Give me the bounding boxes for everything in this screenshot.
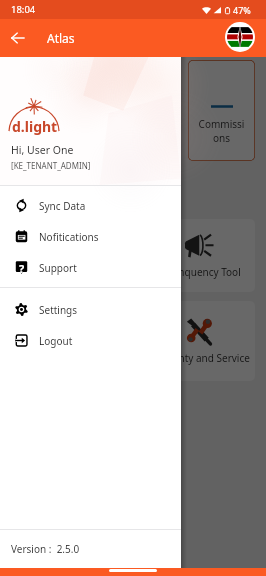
staticText: d.light — [12, 117, 58, 136]
button[interactable]: Settings — [0, 294, 181, 325]
button[interactable]: Delinquency Tool — [11, 219, 121, 292]
staticText: Settings — [39, 303, 78, 317]
staticText: Delinquency Tool — [26, 265, 107, 279]
staticText: Logout — [39, 334, 73, 348]
button[interactable]: ? — [0, 252, 181, 283]
button[interactable]: Sync Data — [0, 190, 181, 221]
staticText: Hi, User One — [11, 143, 74, 157]
staticText: [KE_TENANT_ADMIN] — [11, 160, 91, 171]
staticText: Support — [39, 261, 77, 275]
button[interactable]: Commissions — [114, 60, 181, 161]
button[interactable]: Warranty and Service — [11, 301, 121, 381]
staticText: Nofitications — [39, 230, 99, 244]
button[interactable]: Delinquency Tool — [145, 219, 255, 292]
staticText: Delinquency Tool — [160, 265, 241, 279]
staticText: 18:04 — [11, 3, 36, 16]
button[interactable]: Warranty and Service — [145, 301, 255, 381]
staticText: Version : 2.5.0 — [11, 542, 80, 556]
staticText: Atlas — [47, 30, 75, 46]
staticText: 47% — [233, 4, 251, 16]
button[interactable]: Country — [225, 22, 255, 52]
staticText: Sync Data — [39, 199, 86, 213]
staticText: Warranty and Service — [150, 351, 250, 365]
button[interactable]: Back — [5, 25, 31, 51]
button[interactable]: Nofitications — [0, 221, 181, 252]
staticText: Commissions — [48, 117, 99, 145]
button[interactable]: Logout — [0, 325, 181, 356]
staticText: Commissions — [196, 117, 247, 145]
button[interactable]: Commissions — [188, 60, 255, 161]
button[interactable]: Commissions — [40, 60, 107, 161]
staticText: ? — [19, 261, 25, 274]
